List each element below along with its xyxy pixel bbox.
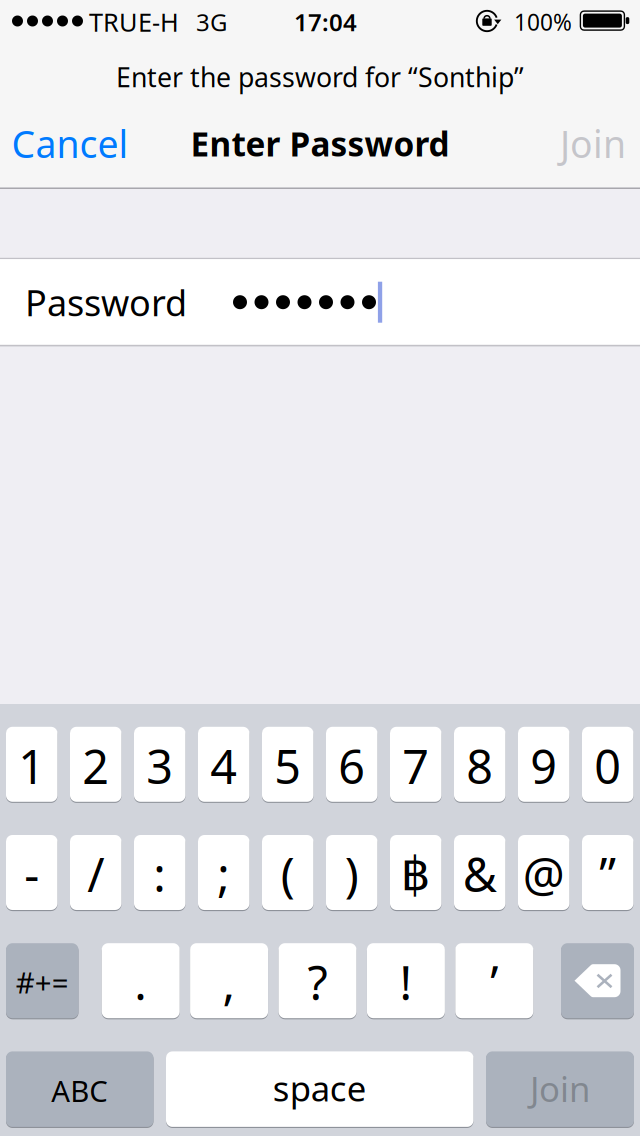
staticText: 2 bbox=[82, 735, 109, 797]
staticText: - bbox=[24, 843, 39, 905]
staticText: 3 bbox=[146, 735, 173, 797]
staticText: 6 bbox=[338, 735, 365, 797]
button[interactable]: Join bbox=[506, 113, 626, 173]
staticText: : bbox=[153, 843, 166, 905]
staticText: @ bbox=[523, 843, 565, 905]
staticText: 5 bbox=[274, 735, 301, 797]
staticText: 4 bbox=[210, 735, 237, 797]
button[interactable]: ฿ bbox=[390, 834, 441, 911]
button[interactable]: 3 bbox=[134, 726, 185, 803]
staticText: 7 bbox=[402, 735, 429, 797]
button[interactable]: ( bbox=[262, 834, 313, 911]
button[interactable]: Join bbox=[486, 1050, 634, 1128]
staticText: & bbox=[463, 843, 497, 905]
button[interactable]: ” bbox=[582, 834, 633, 911]
staticText: / bbox=[87, 843, 104, 905]
staticText: 0 bbox=[594, 735, 621, 797]
staticText: , bbox=[223, 951, 236, 1013]
button[interactable]: ’ bbox=[455, 942, 533, 1019]
staticText: 100% bbox=[514, 7, 572, 37]
staticText: TRUE-H bbox=[89, 5, 179, 39]
staticText: Password bbox=[25, 278, 187, 326]
staticText: ABC bbox=[51, 1071, 108, 1110]
button[interactable]: ; bbox=[198, 834, 249, 911]
staticText: space bbox=[273, 1065, 367, 1111]
button[interactable]: & bbox=[454, 834, 505, 911]
button[interactable]: 9 bbox=[518, 726, 569, 803]
button[interactable]: Cancel bbox=[11, 113, 161, 173]
button[interactable]: space bbox=[166, 1050, 473, 1128]
staticText: ) bbox=[345, 843, 359, 905]
button[interactable]: Password bbox=[0, 259, 640, 345]
button[interactable]: 0 bbox=[582, 726, 633, 803]
button[interactable]: Delete bbox=[561, 942, 634, 1019]
button[interactable]: , bbox=[190, 942, 268, 1019]
staticText: ( bbox=[281, 843, 295, 905]
staticText: Join bbox=[530, 1066, 590, 1112]
staticText: 3G bbox=[196, 6, 227, 38]
staticText: ฿ bbox=[401, 847, 431, 900]
button[interactable]: / bbox=[70, 834, 121, 911]
button[interactable]: 5 bbox=[262, 726, 313, 803]
button[interactable]: 4 bbox=[198, 726, 249, 803]
button[interactable]: 2 bbox=[70, 726, 121, 803]
staticText: Join bbox=[560, 119, 626, 168]
button[interactable]: - bbox=[6, 834, 57, 911]
button[interactable]: 8 bbox=[454, 726, 505, 803]
button[interactable]: 6 bbox=[326, 726, 377, 803]
staticText: 9 bbox=[530, 735, 557, 797]
staticText: Enter the password for “Sonthip” bbox=[116, 59, 524, 95]
staticText: . bbox=[134, 951, 147, 1013]
staticText: 1 bbox=[18, 735, 45, 797]
button[interactable]: @ bbox=[518, 834, 569, 911]
button[interactable]: . bbox=[102, 942, 180, 1019]
staticText: ” bbox=[599, 843, 616, 905]
button[interactable]: : bbox=[134, 834, 185, 911]
button[interactable]: 7 bbox=[390, 726, 441, 803]
staticText: 8 bbox=[466, 735, 493, 797]
button[interactable]: ? bbox=[278, 942, 356, 1019]
button[interactable]: ) bbox=[326, 834, 377, 911]
staticText: 17:04 bbox=[294, 6, 357, 38]
staticText: Cancel bbox=[11, 119, 128, 168]
staticText: Enter Password bbox=[190, 121, 449, 166]
staticText: ! bbox=[399, 951, 412, 1013]
button[interactable]: 1 bbox=[6, 726, 57, 803]
button[interactable]: #+= bbox=[6, 942, 78, 1019]
staticText: ; bbox=[217, 843, 230, 905]
button[interactable]: ABC bbox=[6, 1050, 153, 1128]
staticText: ’ bbox=[490, 951, 498, 1013]
staticText: ? bbox=[307, 951, 327, 1013]
button[interactable]: ! bbox=[367, 942, 445, 1019]
staticText: #+= bbox=[16, 963, 69, 1002]
